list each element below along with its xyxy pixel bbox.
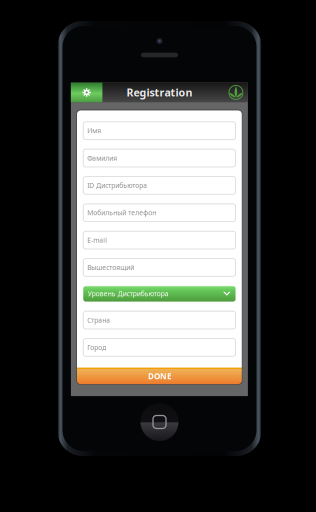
staticText: Страна — [87, 316, 110, 324]
button[interactable]: Вышестоящий — [83, 259, 235, 276]
button[interactable]: Мобильный телефон — [83, 204, 235, 222]
staticText: Мобильный телефон — [87, 208, 156, 217]
staticText: DONE — [148, 371, 171, 381]
staticText: Имя — [87, 126, 101, 135]
staticText: ID Дистрибьютора — [87, 181, 147, 190]
button[interactable]: Город — [83, 338, 235, 356]
button[interactable]: E-mail — [83, 231, 235, 249]
staticText: Registration — [126, 85, 192, 100]
button[interactable]: Фамилия — [83, 149, 235, 167]
button[interactable]: Settings — [71, 83, 102, 102]
staticText: Город — [87, 343, 106, 352]
button[interactable]: DONE — [77, 368, 242, 384]
button[interactable]: Имя — [83, 122, 235, 140]
staticText: E-mail — [87, 236, 107, 245]
button[interactable]: Страна — [83, 311, 235, 329]
staticText: Фамилия — [87, 154, 117, 162]
staticText: Уровень Дистрибьютора — [88, 289, 169, 298]
button[interactable]: ID Дистрибьютора — [83, 176, 235, 194]
button[interactable]: Уровень Дистрибьютора — [83, 286, 235, 302]
staticText: Вышестоящий — [87, 263, 134, 272]
button[interactable]: Home — [224, 83, 248, 102]
